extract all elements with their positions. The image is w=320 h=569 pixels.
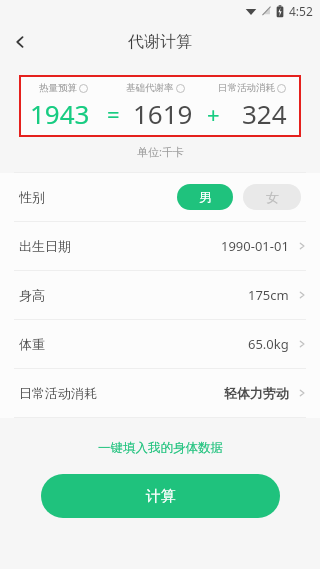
- button[interactable]: 体重: [0, 320, 320, 368]
- staticText: 一键填入我的身体数据: [98, 440, 223, 456]
- staticText: 65.0kg: [248, 335, 289, 353]
- button[interactable]: 女: [243, 184, 301, 210]
- button[interactable]: 热量预算: [19, 82, 108, 94]
- staticText: 男: [199, 189, 212, 205]
- staticText: 性别: [19, 189, 45, 205]
- staticText: 324: [242, 96, 287, 131]
- staticText: 计算: [146, 487, 176, 506]
- staticText: +: [207, 99, 220, 129]
- button[interactable]: Back: [0, 22, 40, 62]
- staticText: 身高: [19, 287, 45, 303]
- staticText: 4:52: [289, 3, 313, 19]
- button[interactable]: 基础代谢率: [108, 82, 203, 94]
- button[interactable]: 身高: [0, 271, 320, 319]
- staticText: 轻体力劳动: [224, 385, 289, 401]
- button[interactable]: 日常活动消耗: [203, 82, 301, 94]
- staticText: 日常活动消耗: [218, 82, 275, 94]
- button[interactable]: 一键填入我的身体数据: [84, 435, 237, 461]
- staticText: 175cm: [248, 286, 289, 304]
- staticText: 体重: [19, 336, 45, 352]
- staticText: 代谢计算: [128, 32, 192, 52]
- staticText: 女: [266, 189, 279, 205]
- button[interactable]: 出生日期: [0, 222, 320, 270]
- staticText: 基础代谢率: [126, 82, 174, 94]
- staticText: 1619: [133, 96, 193, 131]
- button[interactable]: 男: [177, 184, 233, 210]
- staticText: 1943: [30, 96, 90, 131]
- staticText: 1990-01-01: [221, 237, 289, 255]
- staticText: 日常活动消耗: [19, 385, 97, 401]
- button[interactable]: 计算: [41, 474, 280, 518]
- staticText: =: [107, 99, 120, 129]
- staticText: 热量预算: [39, 82, 77, 94]
- staticText: 单位:千卡: [137, 144, 184, 159]
- staticText: 出生日期: [19, 238, 71, 254]
- button[interactable]: 日常活动消耗: [0, 369, 320, 417]
- button[interactable]: 性别: [0, 173, 320, 221]
